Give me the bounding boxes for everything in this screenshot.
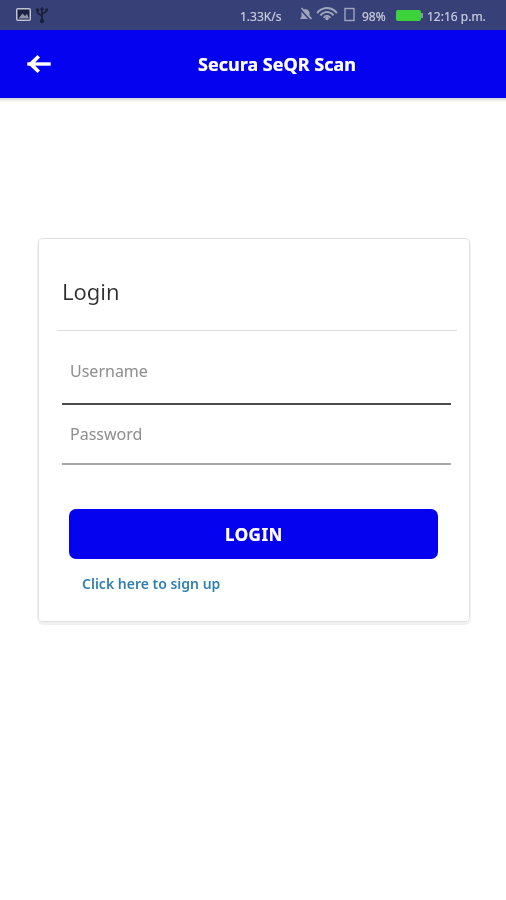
staticText: 98% xyxy=(362,8,386,24)
button[interactable]: LOGIN xyxy=(69,509,438,559)
staticText: 12:16 p.m. xyxy=(427,8,486,24)
button[interactable] xyxy=(14,40,62,88)
staticText: 1.33K/s xyxy=(240,8,282,24)
button[interactable]: Click here to sign up xyxy=(82,574,221,593)
button[interactable]: Username xyxy=(62,356,451,405)
staticText: Secura SeQR Scan xyxy=(198,52,356,77)
button[interactable]: Password xyxy=(62,418,451,463)
staticText: Login xyxy=(62,276,120,306)
staticText: Username xyxy=(70,360,148,382)
staticText: LOGIN xyxy=(225,523,283,546)
staticText: Password xyxy=(70,423,143,445)
